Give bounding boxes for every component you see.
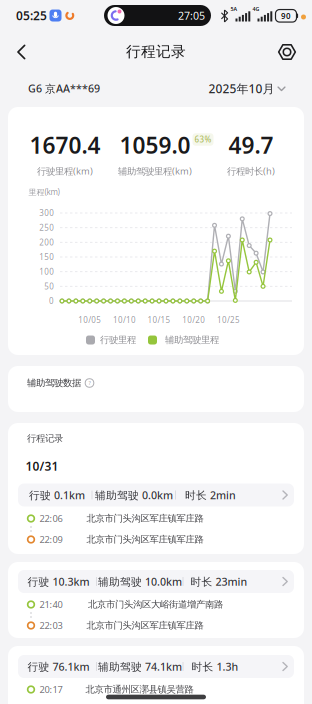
staticText: 行驶里程(km) (37, 165, 93, 177)
staticText: 49.7 (228, 130, 273, 160)
staticText: 63% (194, 134, 211, 145)
staticText: 辅助驾驶 0.0km (95, 488, 173, 502)
staticText: 行驶里程 (100, 334, 136, 346)
staticText: 10/25 (217, 315, 240, 325)
button[interactable]: 行驶 76.1km 辅助驾驶 74.1km 时长 1.3h (18, 655, 294, 678)
staticText: 50 (44, 281, 54, 292)
button[interactable]: 行驶 76.1km 辅助驾驶 74.1km 时长 1.3h (8, 646, 304, 704)
button[interactable]: 辅助驾驶数据 (8, 366, 304, 412)
staticText: 2025年10月 (208, 80, 274, 96)
staticText: 北京市门头沟区军庄镇军庄路 (86, 620, 203, 631)
staticText: 行程记录 (126, 42, 186, 60)
staticText: 5A (230, 5, 237, 13)
staticText: 时长 23min (190, 574, 247, 589)
button[interactable]: 行驶 10.3km 辅助驾驶 10.0km 时长 23min (8, 562, 304, 638)
staticText: 辅助驾驶 74.1km (98, 659, 182, 674)
staticText: 21:40 (39, 598, 62, 611)
button[interactable]: 行驶 0.1km 辅助驾驶 0.0km 时长 2min (18, 483, 294, 506)
staticText: 辅助驾驶里程 (165, 334, 219, 346)
staticText: 90 (281, 10, 291, 21)
staticText: 辅助驾驶里程(km) (118, 165, 192, 177)
staticText: 1059.0 (119, 130, 190, 160)
staticText: 行驶 76.1km (27, 659, 89, 674)
staticText: 150 (39, 252, 54, 262)
staticText: 27:05 (178, 8, 205, 23)
staticText: 4G (252, 5, 259, 13)
staticText: 里程(km) (28, 187, 59, 197)
button[interactable]: Settings (274, 39, 300, 65)
staticText: 22:03 (39, 619, 62, 632)
staticText: 100 (39, 266, 54, 277)
staticText: 时长 2min (185, 488, 236, 502)
button[interactable]: G6 京AA***69 (28, 81, 100, 96)
staticText: 辅助驾驶 10.0km (98, 574, 182, 589)
staticText: 辅助驾驶数据 (27, 377, 81, 389)
staticText: 时长 1.3h (191, 659, 238, 674)
staticText: ? (88, 379, 90, 387)
staticText: 1670.4 (29, 130, 100, 160)
staticText: 0 (49, 296, 54, 306)
staticText: G6 京AA***69 (28, 81, 100, 96)
staticText: 20:17 (39, 683, 62, 696)
staticText: 05:25 (16, 7, 47, 23)
staticText: 北京市门头沟区军庄镇军庄路 (86, 534, 203, 545)
staticText: 250 (39, 222, 54, 233)
staticText: 行程记录 (27, 433, 63, 444)
staticText: 10/10 (113, 315, 136, 325)
staticText: 北京市门头沟区军庄镇军庄路 (86, 513, 203, 524)
staticText: 22:06 (39, 512, 62, 525)
staticText: 300 (39, 208, 54, 218)
staticText: 10/20 (182, 315, 205, 325)
staticText: 行驶 0.1km (29, 488, 85, 502)
staticText: 10/05 (78, 315, 101, 325)
staticText: 200 (39, 237, 54, 248)
staticText: 22:09 (39, 533, 62, 546)
staticText: 北京市门头沟区大峪街道增产南路 (88, 599, 223, 610)
staticText: 10/15 (148, 315, 171, 325)
button[interactable]: 行驶 10.3km 辅助驾驶 10.0km 时长 23min (18, 570, 294, 593)
button[interactable]: Back (10, 40, 34, 64)
staticText: 北京市通州区漷县镇吴营路 (86, 684, 194, 695)
staticText: 行驶 10.3km (27, 574, 89, 589)
button[interactable]: 2025年10月 (201, 79, 293, 97)
staticText: 行程时长(h) (227, 165, 275, 177)
staticText: 10/31 (25, 458, 58, 474)
